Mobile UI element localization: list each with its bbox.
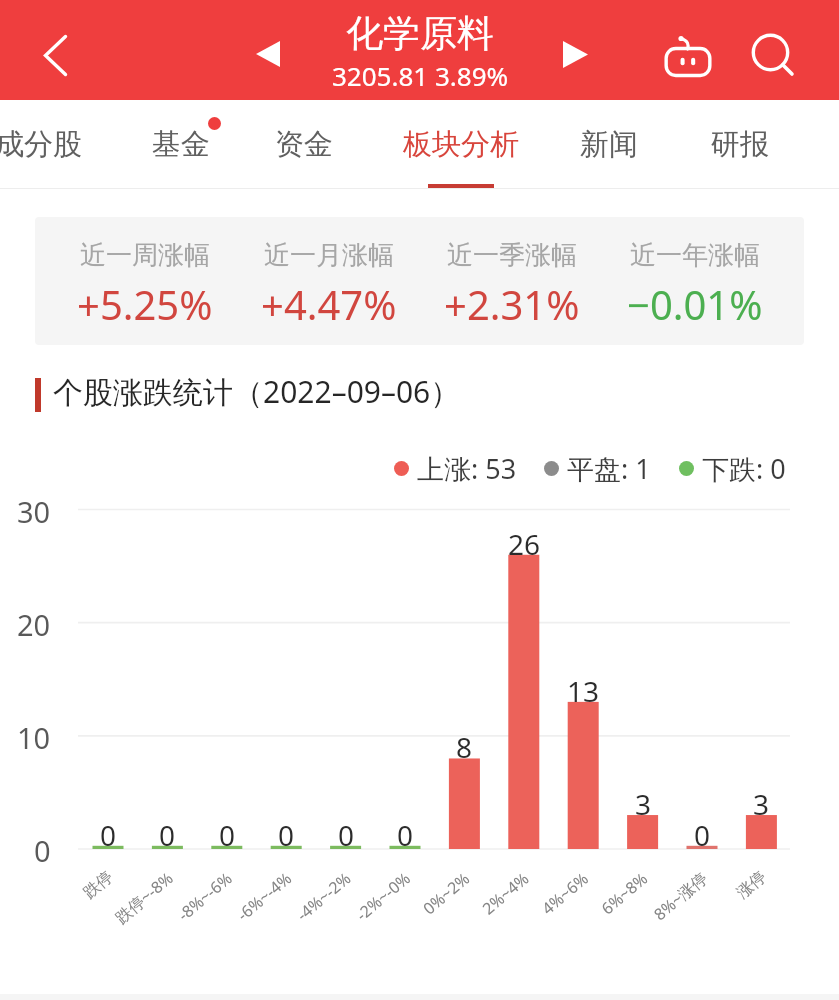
staticText: 13 <box>567 672 600 710</box>
staticText: 26 <box>508 525 541 563</box>
button[interactable]: Back <box>27 27 84 84</box>
button[interactable]: 新闻 <box>558 103 660 186</box>
button[interactable]: 基金 <box>130 103 232 186</box>
staticText: 成分股 <box>0 126 82 163</box>
staticText: 0 <box>100 816 117 854</box>
staticText: 0 <box>34 831 51 870</box>
staticText: 20 <box>17 605 51 644</box>
staticText: 近一季涨幅 <box>447 239 577 272</box>
staticText: 0 <box>338 816 355 854</box>
button[interactable]: Search <box>744 26 802 84</box>
staticText: 3 <box>635 785 652 823</box>
staticText: 上涨: 53 <box>417 450 517 487</box>
staticText: 0 <box>219 816 236 854</box>
staticText: 资金 <box>275 126 333 163</box>
staticText: 近一周涨幅 <box>80 239 210 272</box>
button[interactable]: Next sector <box>547 26 603 82</box>
staticText: 0 <box>159 816 176 854</box>
staticText: 平盘: 1 <box>567 450 651 487</box>
button[interactable]: 研报 <box>689 103 791 186</box>
staticText: +2.31% <box>444 277 580 331</box>
button[interactable]: 资金 <box>253 103 355 186</box>
staticText: −0.01% <box>627 277 763 331</box>
staticText: 30 <box>17 492 51 531</box>
staticText: 0 <box>397 816 414 854</box>
staticText: 化学原料 <box>346 10 494 57</box>
button[interactable]: 成分股 <box>0 103 104 186</box>
staticText: 3205.81 3.89% <box>332 58 509 93</box>
staticText: 新闻 <box>580 126 638 163</box>
staticText: 0 <box>278 816 295 854</box>
staticText: 8 <box>456 728 473 766</box>
staticText: 研报 <box>711 126 769 163</box>
button[interactable]: AI assistant <box>658 26 718 86</box>
button[interactable]: 板块分析 <box>381 103 541 186</box>
staticText: 下跌: 0 <box>702 450 786 487</box>
staticText: 板块分析 <box>403 126 519 163</box>
staticText: +5.25% <box>77 277 213 331</box>
staticText: 3 <box>753 785 770 823</box>
staticText: 近一年涨幅 <box>630 239 760 272</box>
staticText: 个股涨跌统计（2022–09–06） <box>53 371 461 411</box>
button[interactable]: Previous sector <box>240 26 296 82</box>
staticText: 0 <box>694 816 711 854</box>
staticText: 基金 <box>152 126 210 163</box>
staticText: 近一月涨幅 <box>264 239 394 272</box>
staticText: +4.47% <box>261 277 397 331</box>
staticText: 10 <box>17 718 51 757</box>
